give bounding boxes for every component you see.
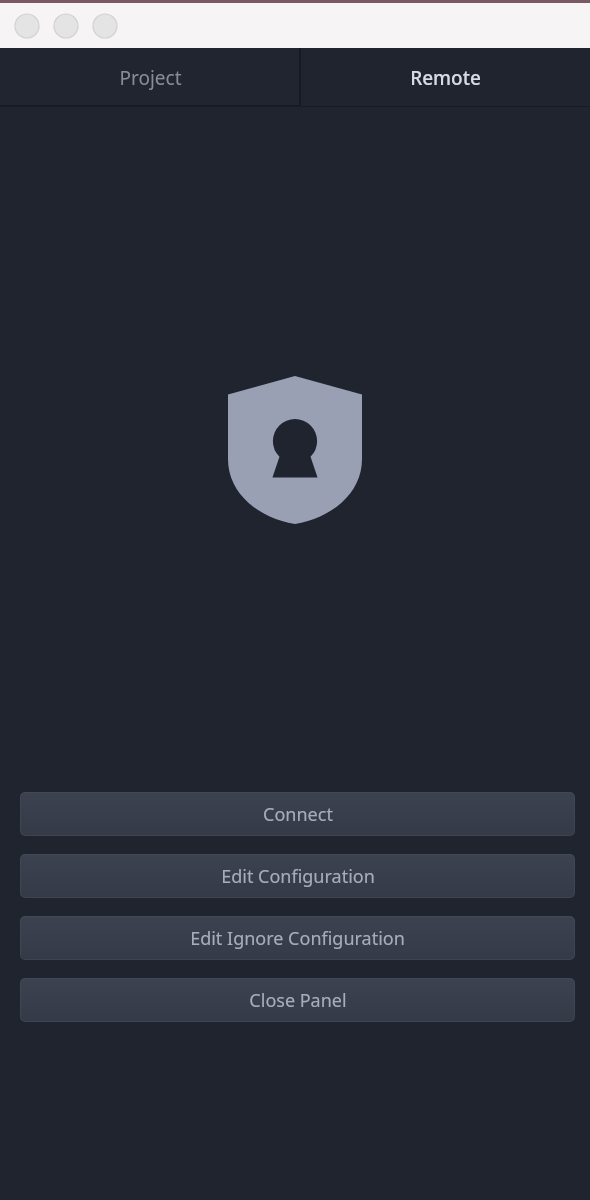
- button[interactable]: Maximize window: [92, 13, 118, 39]
- button[interactable]: Edit Ignore Configuration: [20, 916, 575, 960]
- staticText: Remote: [410, 65, 481, 91]
- button[interactable]: Project: [0, 48, 301, 107]
- staticText: Close Panel: [249, 988, 347, 1013]
- other: Secure connection: [228, 376, 362, 524]
- staticText: Connect: [263, 802, 333, 827]
- staticText: Edit Ignore Configuration: [190, 926, 405, 951]
- button[interactable]: Close Panel: [20, 978, 575, 1022]
- button[interactable]: Edit Configuration: [20, 854, 575, 898]
- button[interactable]: Minimize window: [53, 13, 79, 39]
- button[interactable]: Close window: [14, 13, 40, 39]
- button[interactable]: Connect: [20, 792, 575, 836]
- button[interactable]: Remote: [301, 48, 590, 107]
- staticText: Edit Configuration: [221, 864, 375, 889]
- staticText: Project: [119, 65, 182, 91]
